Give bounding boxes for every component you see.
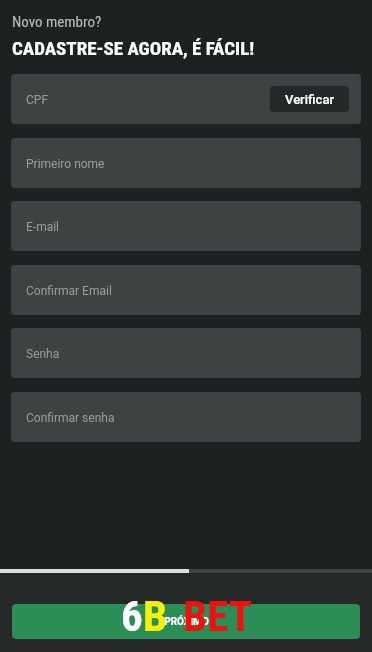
staticText: Confirmar Email	[26, 284, 112, 298]
staticText: PRÓXIMO	[164, 616, 209, 628]
button[interactable]: Confirmar senha	[11, 392, 361, 442]
button[interactable]: Verificar	[270, 86, 349, 112]
staticText: 6	[121, 591, 143, 641]
staticText: Senha	[26, 347, 60, 361]
staticText: Primeiro nome	[26, 157, 105, 171]
staticText: Novo membro?	[12, 13, 102, 31]
button[interactable]: Primeiro nome	[11, 138, 361, 188]
button[interactable]: E-mail	[11, 201, 361, 251]
staticText: E-mail	[26, 220, 60, 234]
staticText: Confirmar senha	[26, 411, 115, 425]
staticText: BET	[183, 591, 253, 641]
button[interactable]: Confirmar Email	[11, 265, 361, 315]
button[interactable]: Senha	[11, 328, 361, 378]
staticText: B	[143, 591, 168, 641]
staticText: CPF	[26, 93, 49, 107]
staticText: CADASTRE-SE AGORA, É FÁCIL!	[12, 37, 255, 59]
staticText: Verificar	[285, 92, 334, 107]
button[interactable]: CPF	[11, 74, 361, 124]
button[interactable]: PRÓXIMO	[12, 604, 360, 639]
